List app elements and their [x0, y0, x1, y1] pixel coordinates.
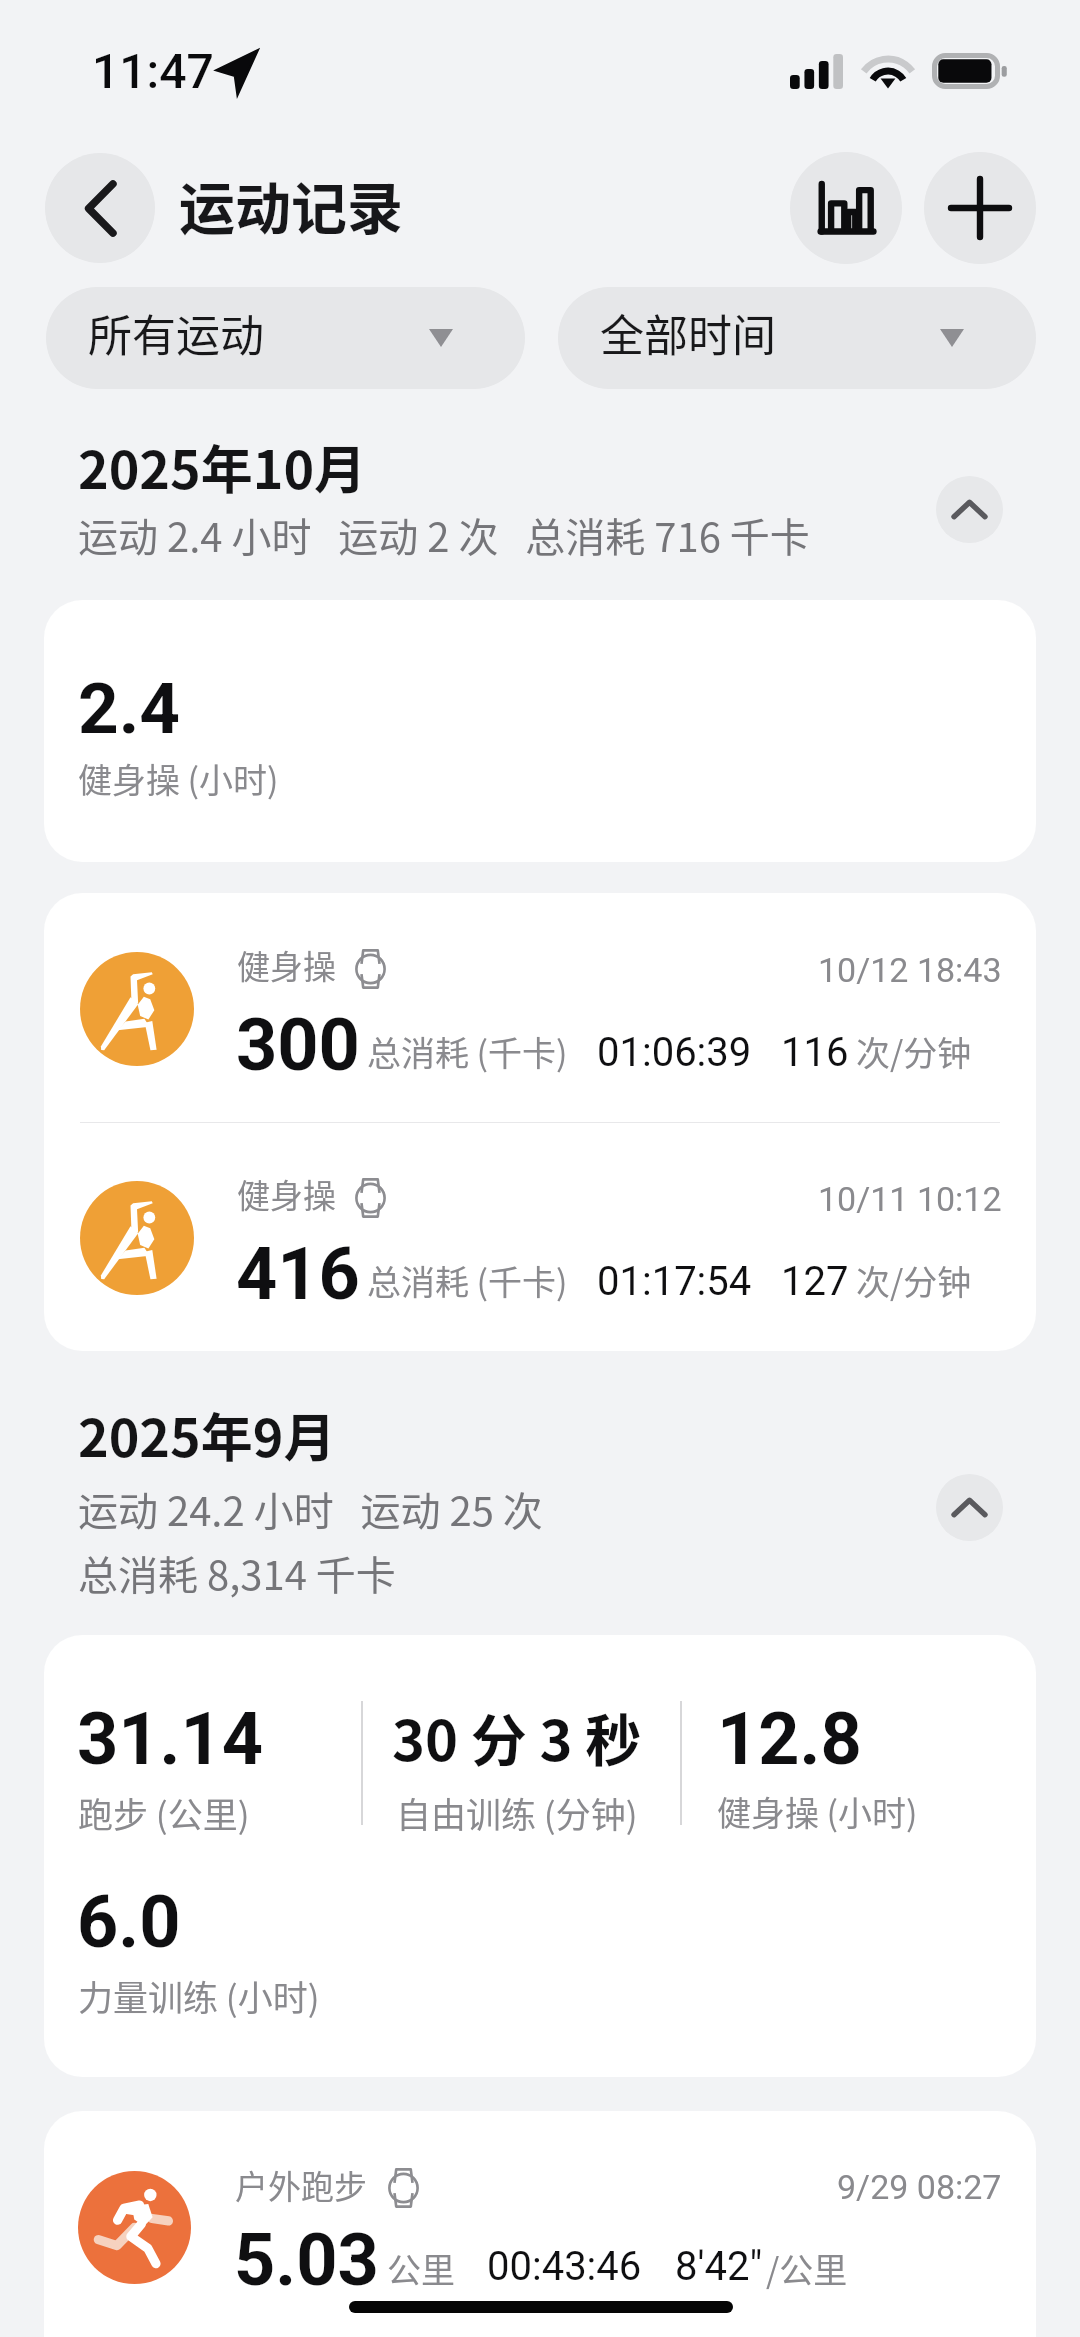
staticText: 01:17:54: [597, 1258, 752, 1305]
staticText: 次/分钟: [856, 1256, 972, 1305]
staticText: 全部时间: [600, 301, 776, 365]
staticText: 5.03: [234, 2218, 379, 2302]
staticText: 30 分 3 秒: [392, 1696, 642, 1777]
staticText: 2.4: [78, 667, 181, 750]
button[interactable]: 健身操: [44, 893, 1036, 1351]
staticText: 416: [236, 1232, 360, 1316]
staticText: 次/分钟: [856, 1027, 972, 1076]
staticText: 01:06:39: [597, 1029, 752, 1076]
staticText: 健身操: [237, 1170, 336, 1218]
staticText: 公里: [387, 2244, 455, 2293]
staticText: 2025年10月: [78, 429, 367, 504]
staticText: 127: [781, 1258, 849, 1305]
staticText: 31.14: [77, 1697, 264, 1781]
staticText: 总消耗 8,314 千卡: [78, 1544, 396, 1602]
staticText: 9/29 08:27: [837, 2167, 1002, 2207]
staticText: 运动 2.4 小时 运动 2 次 总消耗 716 千卡: [78, 506, 810, 564]
staticText: 11:47: [92, 43, 214, 99]
staticText: 00:43:46: [487, 2243, 642, 2290]
staticText: 10/12 18:43: [818, 950, 1002, 990]
staticText: /公里: [766, 2244, 848, 2293]
staticText: 运动记录: [179, 164, 403, 245]
button[interactable]: 全部时间: [558, 287, 1036, 389]
button[interactable]: 所有运动: [46, 287, 525, 389]
button[interactable]: Back: [45, 153, 155, 263]
button[interactable]: Add: [924, 152, 1036, 264]
staticText: 力量训练 (小时): [78, 1970, 320, 2021]
staticText: 总消耗 (千卡): [367, 1027, 568, 1076]
button[interactable]: Statistics: [790, 152, 902, 264]
staticText: 健身操 (小时): [78, 754, 279, 803]
staticText: 116: [781, 1029, 849, 1076]
staticText: 自由训练 (分钟): [396, 1787, 638, 1838]
staticText: 健身操: [237, 941, 336, 989]
staticText: 8′42″: [675, 2243, 763, 2290]
staticText: 所有运动: [88, 301, 264, 365]
staticText: 12.8: [717, 1697, 862, 1781]
staticText: 总消耗 (千卡): [367, 1256, 568, 1305]
button[interactable]: 31.14: [44, 1635, 1036, 2077]
staticText: 300: [236, 1003, 360, 1087]
staticText: 户外跑步: [235, 2161, 367, 2209]
button[interactable]: 2.4: [44, 600, 1036, 862]
staticText: 健身操 (小时): [717, 1787, 918, 1836]
button[interactable]: Collapse: [936, 1474, 1003, 1541]
staticText: 6.0: [77, 1880, 181, 1964]
staticText: 跑步 (公里): [78, 1787, 250, 1838]
button[interactable]: Collapse: [936, 476, 1003, 543]
staticText: 2025年9月: [78, 1397, 336, 1472]
button[interactable]: 户外跑步: [44, 2111, 1036, 2337]
staticText: 10/11 10:12: [818, 1179, 1002, 1219]
staticText: 运动 24.2 小时 运动 25 次: [78, 1480, 543, 1538]
